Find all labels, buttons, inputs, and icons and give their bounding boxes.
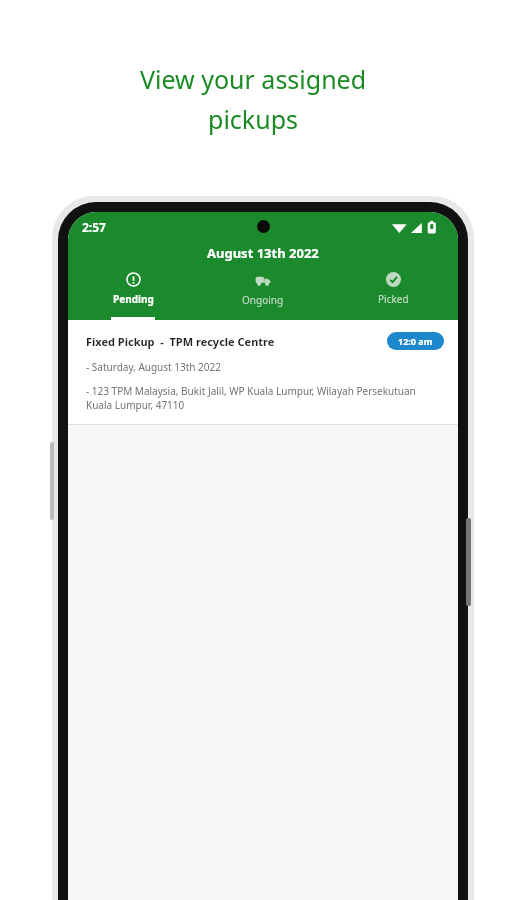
staticText: - 123 TPM Malaysia, Bukit Jalil, WP Kual… — [86, 384, 433, 412]
staticText: Pending — [113, 292, 154, 306]
staticText: pickups — [208, 102, 298, 136]
staticText: View your assigned — [140, 62, 367, 96]
staticText: Fixed Pickup - TPM recycle Centre — [86, 334, 275, 349]
button[interactable]: Picked — [328, 266, 458, 320]
other: Pending — [126, 272, 141, 287]
staticText: Picked — [378, 292, 409, 306]
other: Picked — [386, 272, 401, 287]
button[interactable]: Fixed Pickup - TPM recycle Centre — [68, 320, 458, 424]
staticText: Ongoing — [242, 293, 284, 307]
staticText: August 13th 2022 — [207, 244, 319, 262]
other: Ongoing — [255, 272, 271, 288]
staticText: - Saturday, August 13th 2022 — [86, 360, 221, 374]
button[interactable]: Ongoing — [198, 266, 328, 320]
staticText: 2:57 — [82, 219, 106, 235]
button[interactable]: Pending — [68, 266, 198, 320]
staticText: 12:0 am — [398, 335, 433, 347]
